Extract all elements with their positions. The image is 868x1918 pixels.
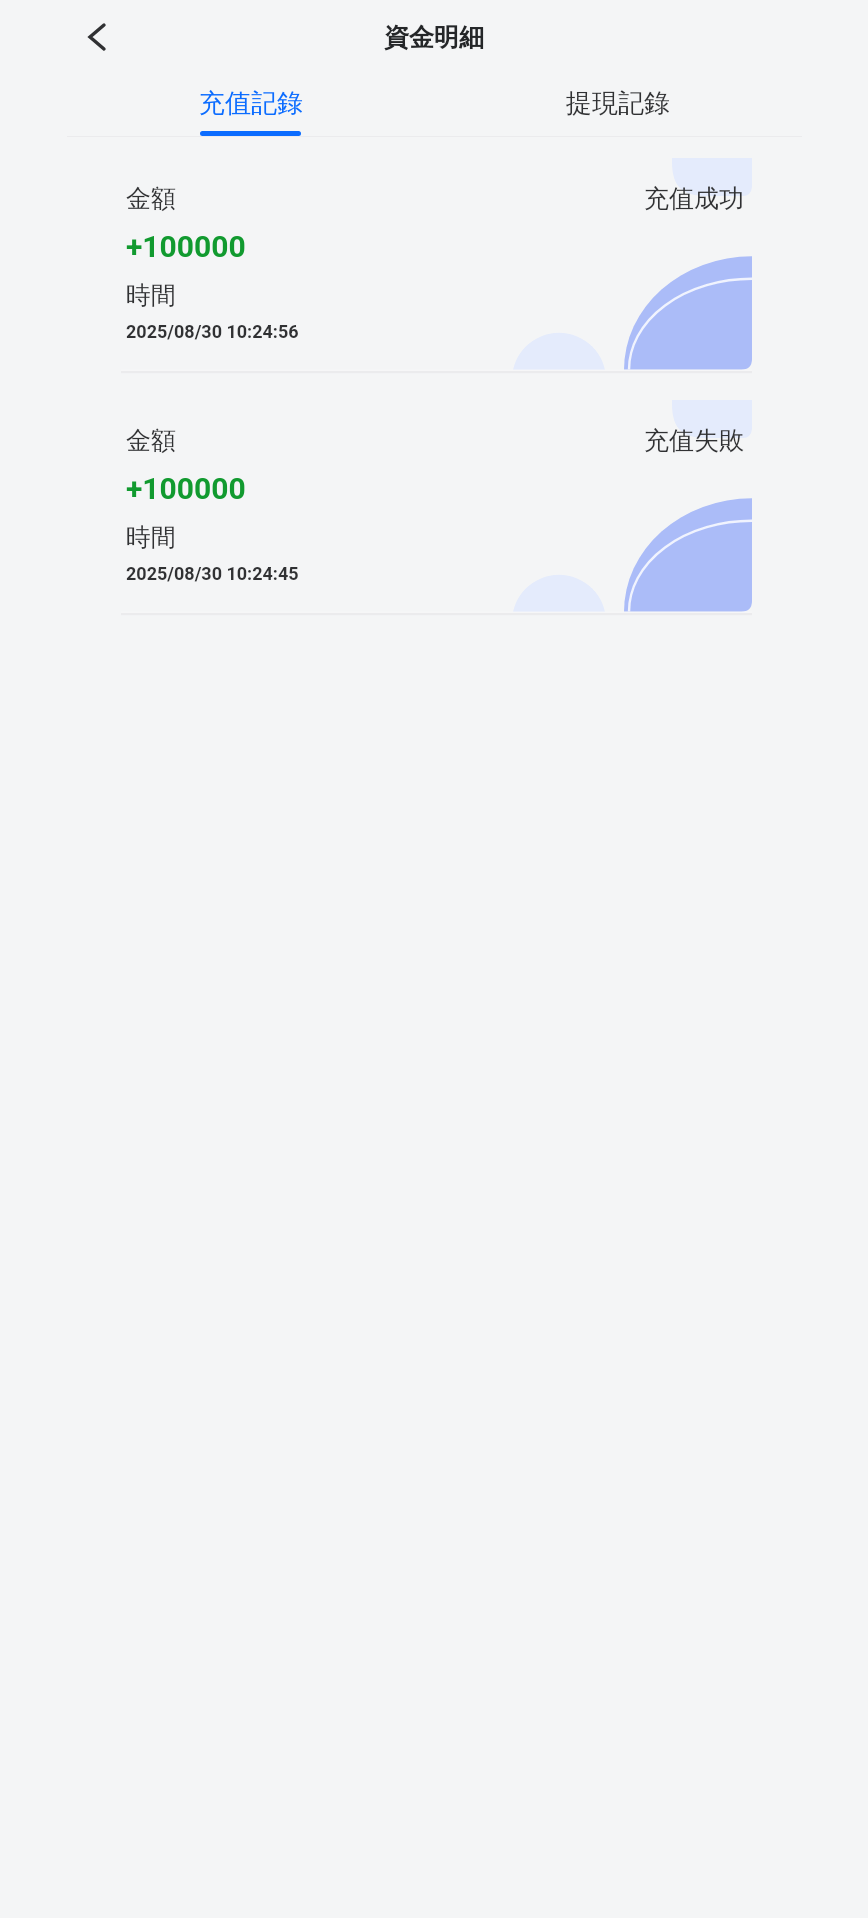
staticText: +100000 xyxy=(126,471,246,506)
button[interactable]: 充值記錄 xyxy=(67,74,434,137)
staticText: 時間 xyxy=(126,522,176,553)
staticText: 2025/08/30 10:24:45 xyxy=(126,563,299,584)
staticText: 金額 xyxy=(126,183,176,214)
button[interactable]: 金額 xyxy=(121,158,752,373)
staticText: 資金明細 xyxy=(384,22,484,53)
button[interactable]: 提現記錄 xyxy=(434,74,802,137)
staticText: 時間 xyxy=(126,280,176,311)
staticText: +100000 xyxy=(126,229,246,264)
staticText: 充值記錄 xyxy=(199,87,303,120)
button[interactable]: 金額 xyxy=(121,400,752,615)
staticText: 充值成功 xyxy=(644,183,744,214)
staticText: 2025/08/30 10:24:56 xyxy=(126,321,299,342)
button[interactable]: Back xyxy=(69,9,125,65)
staticText: 充值失敗 xyxy=(644,425,744,456)
staticText: 提現記錄 xyxy=(566,87,670,120)
staticText: 金額 xyxy=(126,425,176,456)
